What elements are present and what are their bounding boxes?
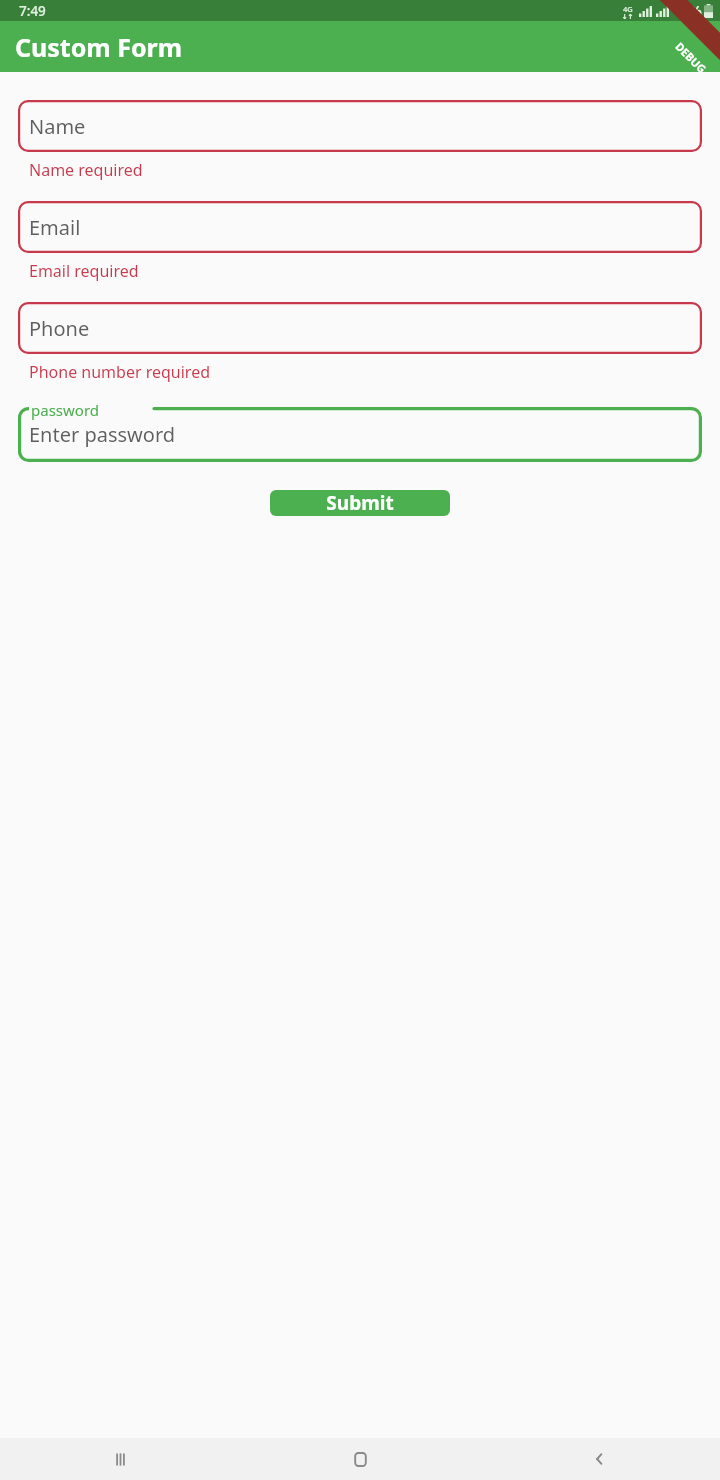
button[interactable]: Back [480,1438,720,1480]
button[interactable]: Recents [0,1438,240,1480]
staticText: Email [29,214,81,241]
button[interactable]: Enter password [18,407,702,462]
button[interactable]: Submit [270,490,450,516]
staticText: Phone [29,315,90,342]
staticText: Enter password [29,421,176,448]
button[interactable]: Phone [18,302,702,354]
staticText: DEBUG [672,39,710,76]
staticText: Custom Form [15,30,183,64]
staticText: 46% [674,2,702,20]
staticText: 4G [623,4,633,14]
staticText: Name required [29,159,143,181]
staticText: Email required [29,260,139,282]
button[interactable]: Email [18,201,702,253]
staticText: Submit [326,490,394,516]
staticText: 7:49 [19,2,46,20]
button[interactable]: Home [240,1438,480,1480]
staticText: Phone number required [29,361,211,383]
button[interactable]: Name [18,100,702,152]
staticText: Name [29,113,86,140]
staticText: password [31,400,99,420]
